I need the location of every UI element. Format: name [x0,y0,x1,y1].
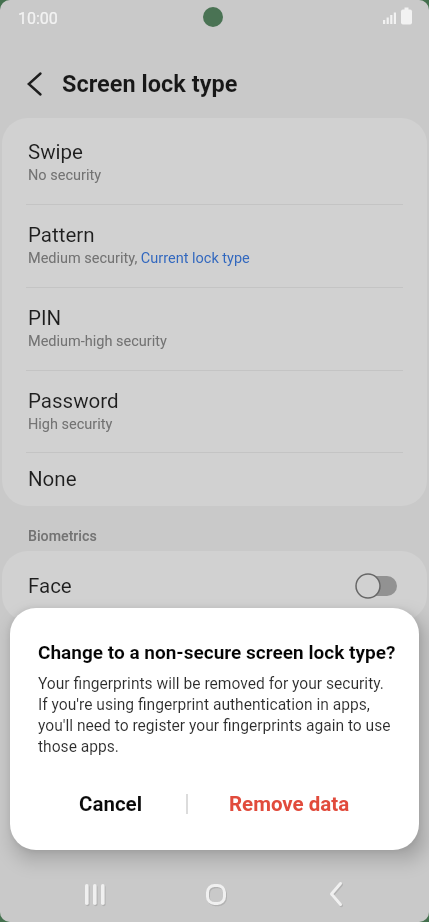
staticText: Biometrics [28,528,97,545]
staticText: those apps. [38,738,119,756]
button[interactable]: Password [2,371,427,452]
button[interactable]: None [2,453,427,506]
staticText: None [28,467,77,491]
staticText: If you're using fingerprint authenticati… [38,696,370,714]
staticText: Screen lock type [62,70,238,98]
button[interactable]: Swipe [2,122,427,204]
button[interactable]: Pattern [2,205,427,287]
button[interactable]: Screen lock type [62,70,238,98]
staticText: PIN [28,306,62,330]
staticText: Change to a non-secure screen lock type? [38,641,396,663]
button[interactable] [85,884,105,906]
staticText: No security [28,167,102,184]
button[interactable]: Cancel [36,776,186,832]
staticText: Pattern [28,223,95,247]
staticText: High security [28,416,113,433]
button[interactable] [206,884,226,906]
staticText: Cancel [79,792,143,816]
staticText: Face [28,574,72,598]
staticText: you'll need to register your fingerprint… [38,717,391,735]
button[interactable] [330,882,342,906]
button[interactable]: PIN [2,288,427,370]
button[interactable]: Remove data [184,776,394,832]
button[interactable]: Face [2,551,427,621]
button[interactable] [27,72,42,96]
staticText: Password [28,389,119,413]
staticText: Remove data [229,792,350,816]
staticText: Medium-high security [28,333,167,350]
staticText: 10:00 [18,9,58,28]
staticText: Medium security, Current lock type [28,250,250,267]
staticText: Your fingerprints will be removed for yo… [38,675,384,693]
staticText: Swipe [28,140,83,164]
